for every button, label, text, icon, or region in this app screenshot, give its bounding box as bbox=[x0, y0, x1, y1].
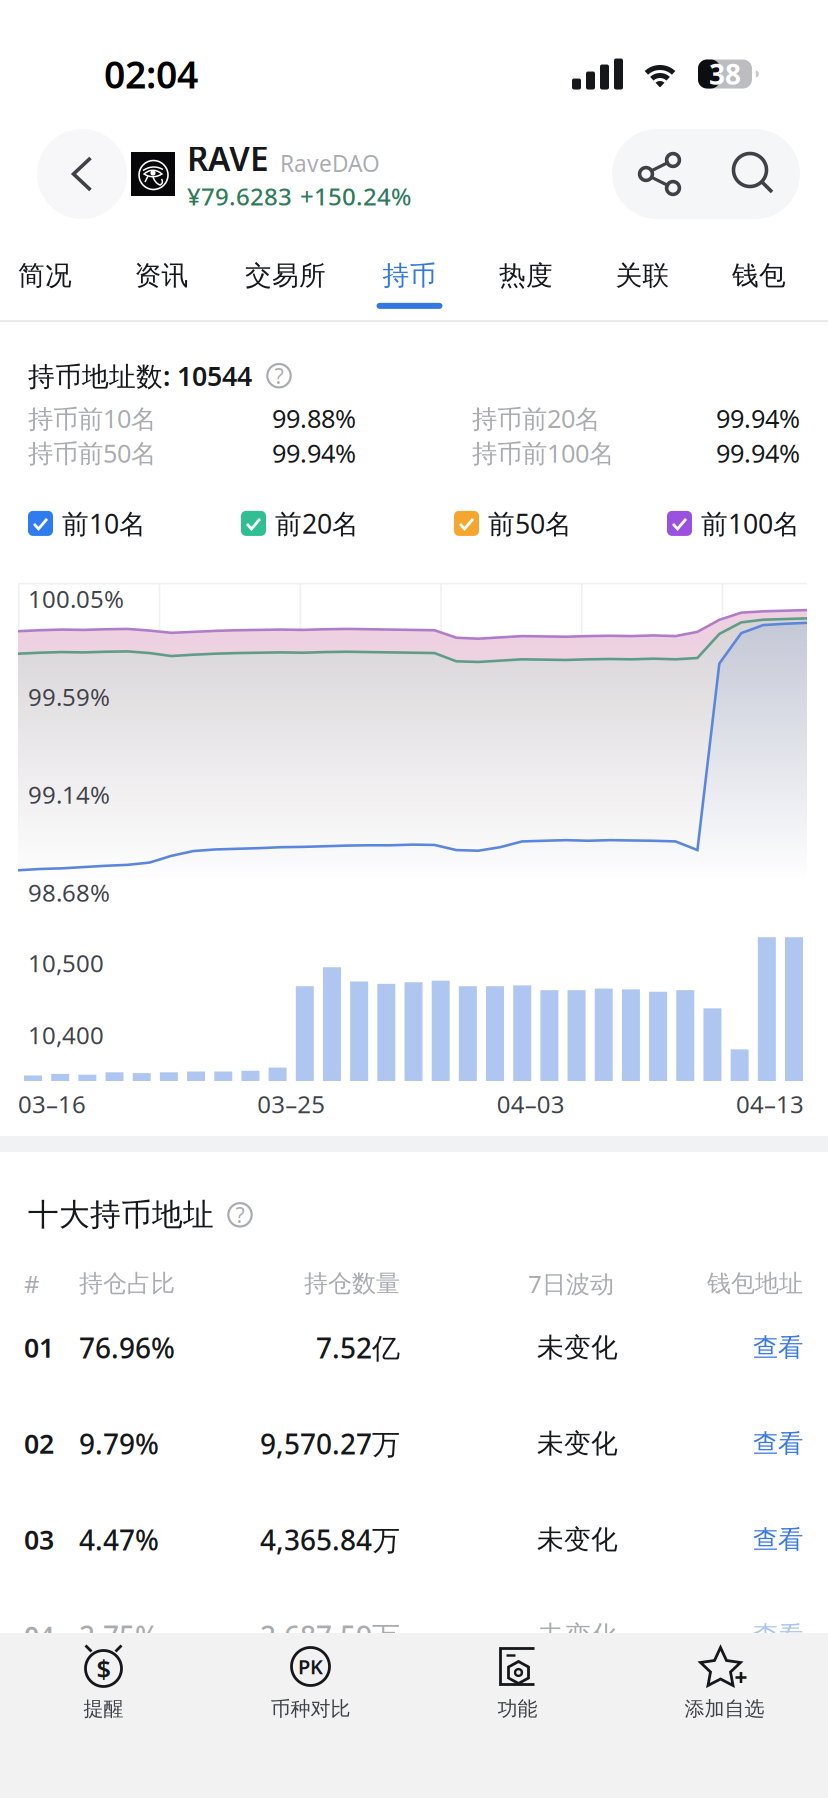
staticText: 持币前10名 bbox=[28, 401, 156, 435]
button[interactable]: 持币 bbox=[376, 237, 442, 319]
staticText: ? bbox=[235, 1201, 244, 1229]
button[interactable]: Back bbox=[37, 129, 127, 219]
staticText: 十大持币地址 bbox=[28, 1196, 214, 1234]
button[interactable]: 02 bbox=[0, 1395, 828, 1491]
staticText: 100.05% bbox=[28, 583, 124, 615]
staticText: ¥79.6283 bbox=[187, 180, 292, 212]
staticText: 98.68% bbox=[28, 876, 110, 908]
staticText: 查看 bbox=[753, 1620, 803, 1651]
staticText: 99.88% bbox=[272, 401, 356, 435]
staticText: 10,400 bbox=[28, 1019, 104, 1051]
staticText: 简况 bbox=[18, 259, 72, 292]
button[interactable]: 前20名 bbox=[241, 506, 359, 541]
staticText: 4.47% bbox=[79, 1521, 159, 1558]
staticText: 7.52亿 bbox=[316, 1329, 400, 1366]
staticText: 交易所 bbox=[245, 259, 326, 292]
staticText: 提醒 bbox=[83, 1696, 123, 1721]
button[interactable]: 04 bbox=[0, 1587, 828, 1683]
button[interactable]: 资讯 bbox=[128, 237, 194, 319]
staticText: 99.14% bbox=[28, 779, 110, 810]
staticText: +150.24% bbox=[300, 180, 411, 212]
staticText: 04–13 bbox=[736, 1088, 804, 1120]
staticText: 未变化 bbox=[537, 1331, 618, 1364]
staticText: 99.94% bbox=[272, 436, 356, 470]
button[interactable]: 交易所 bbox=[245, 237, 326, 319]
button[interactable]: 01 bbox=[0, 1299, 828, 1395]
button[interactable]: Share bbox=[612, 132, 706, 216]
button[interactable]: 前100名 bbox=[667, 506, 800, 541]
button[interactable]: 前10名 bbox=[28, 506, 146, 541]
staticText: 前10名 bbox=[62, 506, 146, 541]
staticText: 查看 bbox=[753, 1524, 803, 1555]
staticText: 查看 bbox=[753, 1332, 803, 1363]
staticText: RAVE bbox=[187, 136, 269, 180]
staticText: 钱包地址 bbox=[707, 1269, 803, 1298]
staticText: $ bbox=[96, 1652, 110, 1685]
staticText: 持币 bbox=[382, 259, 436, 292]
staticText: 查看 bbox=[753, 1428, 803, 1459]
staticText: 持币地址数: 10544 bbox=[28, 358, 252, 393]
staticText: 未变化 bbox=[537, 1427, 618, 1460]
staticText: # bbox=[24, 1268, 40, 1299]
button[interactable]: 前50名 bbox=[454, 506, 572, 541]
staticText: 99.94% bbox=[716, 401, 800, 435]
staticText: 01 bbox=[24, 1330, 54, 1365]
staticText: 币种对比 bbox=[270, 1696, 350, 1721]
staticText: 03 bbox=[24, 1522, 54, 1557]
button[interactable]: 03 bbox=[0, 1491, 828, 1587]
staticText: 03–25 bbox=[257, 1088, 325, 1120]
staticText: 02 bbox=[24, 1426, 54, 1461]
staticText: 前20名 bbox=[275, 506, 359, 541]
staticText: 前100名 bbox=[701, 506, 800, 541]
staticText: 功能 bbox=[497, 1696, 537, 1721]
staticText: 2.75% bbox=[79, 1617, 159, 1654]
staticText: RaveDAO bbox=[280, 148, 380, 178]
staticText: 02:04 bbox=[104, 49, 198, 99]
staticText: 2,687.59万 bbox=[260, 1617, 400, 1654]
staticText: 持仓占比 bbox=[79, 1269, 175, 1298]
staticText: 资讯 bbox=[134, 259, 188, 292]
staticText: 持币前50名 bbox=[28, 436, 156, 470]
staticText: ? bbox=[274, 361, 283, 390]
staticText: 76.96% bbox=[79, 1329, 175, 1366]
staticText: 未变化 bbox=[537, 1619, 618, 1652]
staticText: 热度 bbox=[499, 259, 553, 292]
staticText: 03–16 bbox=[18, 1088, 86, 1120]
button[interactable]: Search bbox=[706, 132, 800, 216]
button[interactable]: 添加自选 bbox=[621, 1620, 828, 1798]
button[interactable]: 钱包 bbox=[726, 237, 792, 319]
button[interactable]: 关联 bbox=[609, 237, 675, 319]
staticText: 9,570.27万 bbox=[260, 1425, 400, 1462]
staticText: 7日波动 bbox=[528, 1268, 614, 1299]
button[interactable]: PK bbox=[207, 1620, 414, 1798]
staticText: 前50名 bbox=[488, 506, 572, 541]
button[interactable]: 功能 bbox=[414, 1620, 621, 1798]
staticText: 9.79% bbox=[79, 1425, 159, 1462]
staticText: 关联 bbox=[615, 259, 669, 292]
staticText: 持币前20名 bbox=[472, 401, 600, 435]
staticText: 04 bbox=[24, 1618, 54, 1653]
staticText: 钱包 bbox=[732, 259, 786, 292]
staticText: 未变化 bbox=[537, 1523, 618, 1556]
staticText: 38 bbox=[709, 55, 741, 93]
staticText: 4,365.84万 bbox=[260, 1521, 400, 1558]
staticText: 10,500 bbox=[28, 947, 104, 979]
staticText: PK bbox=[298, 1653, 323, 1680]
staticText: 04–03 bbox=[497, 1088, 565, 1120]
staticText: 99.59% bbox=[28, 681, 110, 713]
staticText: 持仓数量 bbox=[304, 1269, 400, 1298]
button[interactable]: 简况 bbox=[12, 237, 78, 319]
staticText: 持币前100名 bbox=[472, 436, 614, 470]
button[interactable]: $ bbox=[0, 1620, 207, 1798]
staticText: 99.94% bbox=[716, 436, 800, 470]
button[interactable]: 热度 bbox=[493, 237, 559, 319]
staticText: 添加自选 bbox=[684, 1696, 764, 1721]
